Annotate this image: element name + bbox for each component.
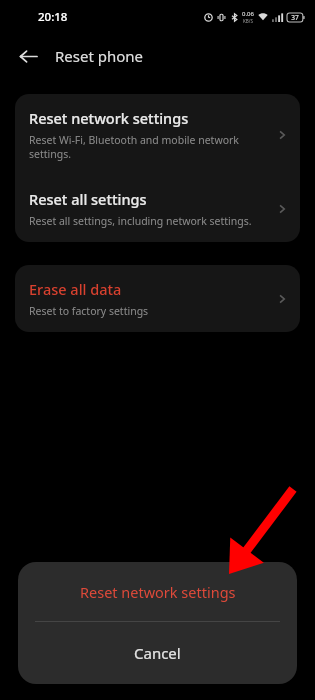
- staticText: Reset network settings: [80, 582, 236, 602]
- button[interactable]: Back: [10, 38, 46, 74]
- staticText: 0.06: [242, 10, 254, 18]
- staticText: Cancel: [134, 643, 181, 663]
- staticText: Reset phone: [55, 46, 144, 66]
- button[interactable]: Erase all data: [15, 265, 300, 332]
- staticText: Erase all data: [29, 279, 122, 299]
- button[interactable]: Reset network settings: [15, 94, 300, 175]
- button[interactable]: Reset all settings: [15, 175, 300, 242]
- staticText: Reset Wi-Fi, Bluetooth and mobile networ…: [29, 133, 274, 161]
- staticText: Reset to factory settings: [29, 304, 149, 318]
- staticText: Reset all settings, including network se…: [29, 214, 252, 228]
- staticText: Reset all settings: [29, 189, 147, 209]
- staticText: Reset network settings: [29, 108, 189, 128]
- staticText: KB/S: [243, 18, 253, 24]
- staticText: 37: [291, 13, 299, 22]
- staticText: 20:18: [38, 9, 68, 25]
- button[interactable]: Reset network settings: [18, 562, 297, 621]
- button[interactable]: Cancel: [18, 622, 297, 684]
